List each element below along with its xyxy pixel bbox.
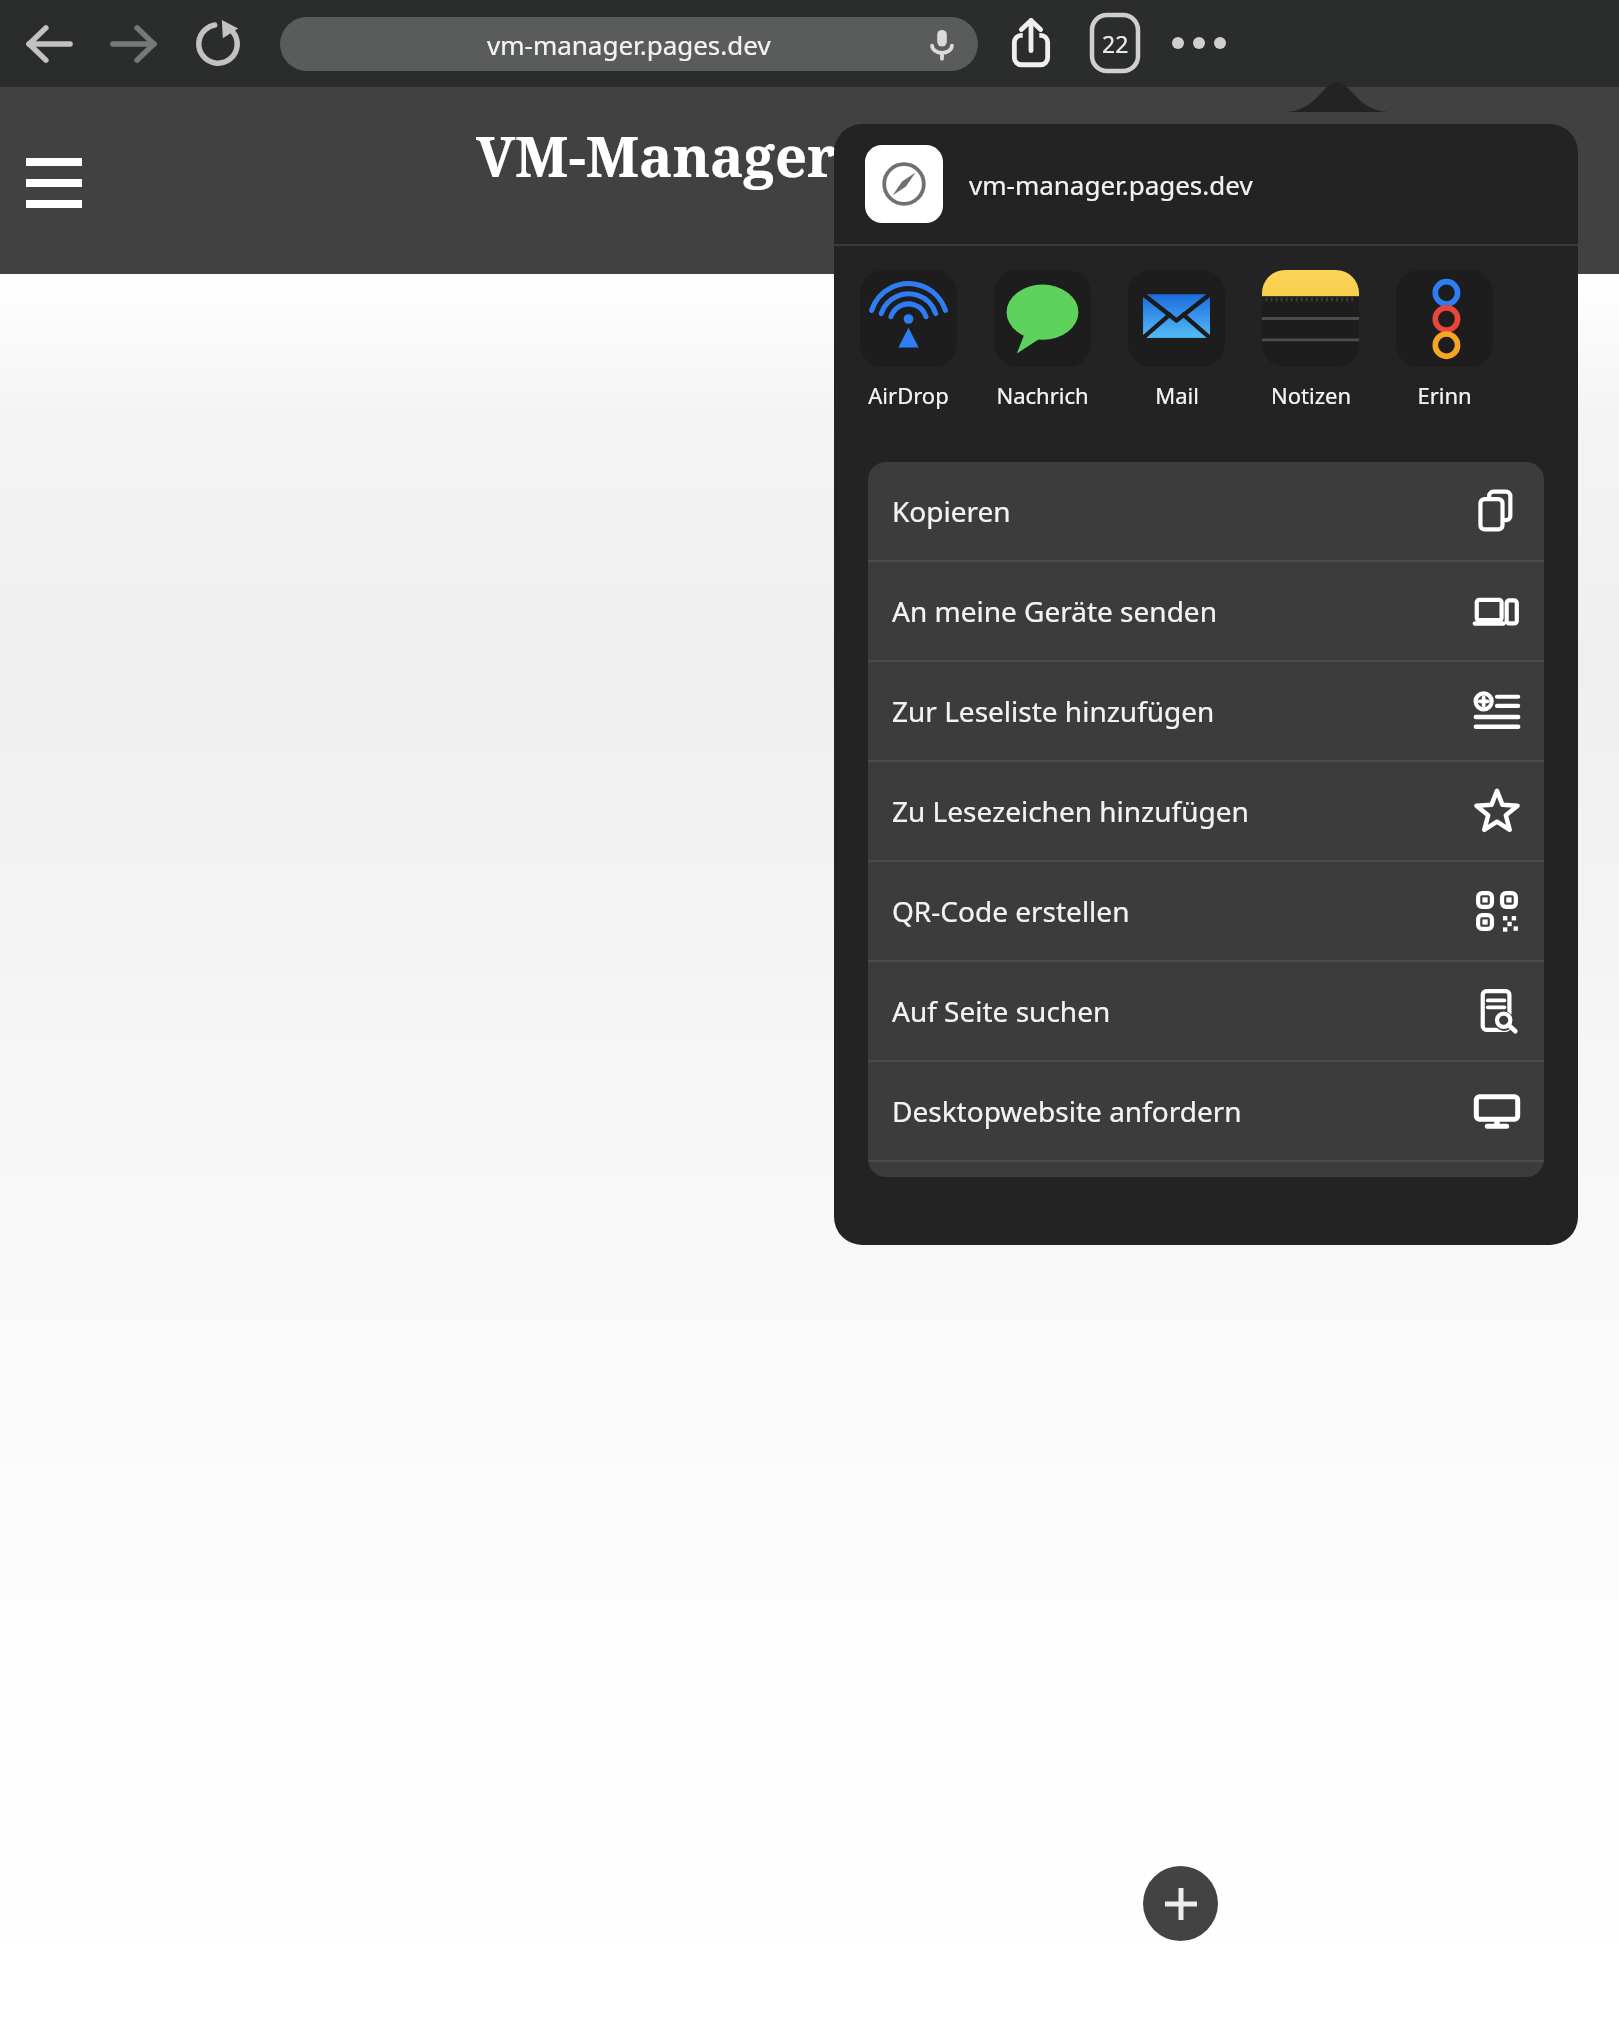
button[interactable]: vm-manager.pages.dev [280, 17, 978, 71]
staticText: QR-Code erstellen [892, 892, 1130, 930]
button[interactable]: An meine Geräte senden [868, 562, 1544, 660]
staticText: Zur Leseliste hinzufügen [892, 692, 1215, 730]
button[interactable]: Nachrichten [994, 270, 1091, 410]
staticText: Auf Seite suchen [892, 992, 1111, 1030]
button[interactable]: Share [999, 11, 1063, 75]
button[interactable]: QR-Code erstellen [868, 862, 1544, 960]
staticText: Nachrichten [994, 380, 1091, 410]
staticText: AirDrop [868, 380, 949, 410]
staticText: Notizen [1271, 380, 1351, 410]
button[interactable]: Kopieren [868, 462, 1544, 560]
button[interactable]: Auf Seite suchen [868, 962, 1544, 1060]
button[interactable]: Notizen [1262, 270, 1359, 410]
staticText: VM-Manager [476, 117, 837, 193]
staticText: Mail [1155, 380, 1199, 410]
button[interactable]: Add [1143, 1866, 1218, 1941]
button[interactable]: AirDrop [860, 270, 957, 410]
button[interactable]: Mail [1128, 270, 1225, 410]
staticText: An meine Geräte senden [892, 592, 1217, 630]
button[interactable]: Forward [103, 13, 165, 75]
staticText: Erinn [1417, 380, 1472, 410]
button[interactable]: Erinn [1396, 270, 1493, 410]
button[interactable]: Zu Lesezeichen hinzufügen [868, 762, 1544, 860]
staticText: 22 [1102, 28, 1129, 59]
staticText: vm-manager.pages.dev [487, 27, 771, 62]
button[interactable]: Reload [187, 13, 249, 75]
button[interactable]: Back [18, 13, 80, 75]
button[interactable]: Zur Leseliste hinzufügen [868, 662, 1544, 760]
staticText: Desktopwebsite anfordern [892, 1092, 1242, 1130]
button[interactable]: Desktopwebsite anfordern [868, 1062, 1544, 1160]
button[interactable]: More options [1167, 11, 1231, 75]
staticText: Zu Lesezeichen hinzufügen [892, 792, 1249, 830]
button[interactable]: Menu [22, 150, 84, 210]
staticText: Kopieren [892, 492, 1011, 530]
staticText: vm-manager.pages.dev [969, 167, 1253, 202]
button[interactable]: vm-manager.pages.dev [834, 124, 1578, 244]
button[interactable]: Tabs [1083, 11, 1147, 75]
